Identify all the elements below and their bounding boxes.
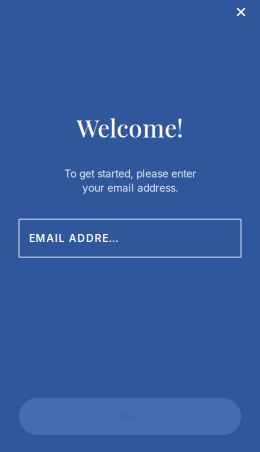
button[interactable]: Next [19, 398, 241, 435]
staticText: Welcome! [76, 111, 183, 143]
staticText: To get started, please enter your email … [64, 167, 196, 194]
staticText: EMAIL ADDRESS [29, 232, 123, 244]
button[interactable]: EMAIL ADDRESS [19, 219, 241, 257]
button[interactable]: Close [228, 0, 254, 24]
